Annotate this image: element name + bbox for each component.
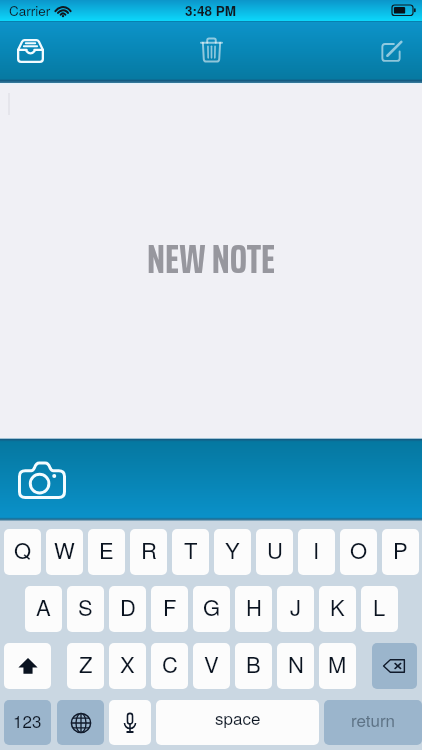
staticText: M	[328, 648, 347, 680]
staticText: 123	[13, 708, 42, 732]
staticText: J	[290, 591, 302, 623]
staticText: L	[373, 591, 386, 623]
button[interactable]: N	[277, 643, 314, 689]
staticText: V	[204, 648, 219, 680]
button[interactable]: space	[156, 700, 319, 745]
button[interactable]: Archive	[4, 25, 56, 77]
staticText: B	[246, 648, 261, 680]
button[interactable]: G	[193, 586, 230, 632]
button[interactable]: X	[109, 643, 146, 689]
button[interactable]: W	[46, 529, 83, 575]
button[interactable]: U	[256, 529, 293, 575]
button[interactable]: I	[298, 529, 335, 575]
staticText: P	[393, 534, 408, 566]
staticText: O	[350, 534, 368, 566]
staticText: 3:48 PM	[185, 1, 237, 20]
button[interactable]: R	[130, 529, 167, 575]
button[interactable]: Z	[67, 643, 104, 689]
button[interactable]: H	[235, 586, 272, 632]
staticText: E	[99, 534, 114, 566]
staticText: X	[120, 648, 135, 680]
staticText: D	[120, 591, 136, 623]
staticText: C	[162, 648, 178, 680]
button[interactable]: Camera	[7, 451, 76, 509]
button[interactable]: E	[88, 529, 125, 575]
button[interactable]: Shift	[4, 643, 51, 689]
button[interactable]: T	[172, 529, 209, 575]
staticText: R	[141, 534, 157, 566]
button[interactable]: C	[151, 643, 188, 689]
staticText: N	[288, 648, 304, 680]
button[interactable]: P	[382, 529, 419, 575]
staticText: NEW NOTE	[147, 226, 276, 291]
button[interactable]: Compose	[365, 26, 417, 78]
staticText: Carrier	[9, 1, 51, 20]
button[interactable]: V	[193, 643, 230, 689]
button[interactable]: S	[67, 586, 104, 632]
button[interactable]: D	[109, 586, 146, 632]
staticText: space	[215, 705, 261, 729]
button[interactable]: return	[324, 700, 422, 745]
button[interactable]: L	[361, 586, 398, 632]
button[interactable]: A	[25, 586, 62, 632]
staticText: H	[246, 591, 262, 623]
button[interactable]: Backspace	[372, 643, 417, 689]
button[interactable]: Y	[214, 529, 251, 575]
staticText: return	[351, 707, 396, 731]
staticText: A	[36, 591, 51, 623]
button[interactable]: Switch keyboard	[57, 700, 104, 745]
staticText: Q	[14, 534, 32, 566]
button[interactable]: 123	[4, 700, 51, 745]
staticText: W	[54, 534, 75, 566]
button[interactable]: K	[319, 586, 356, 632]
button[interactable]: M	[319, 643, 356, 689]
button[interactable]: J	[277, 586, 314, 632]
button[interactable]: F	[151, 586, 188, 632]
button[interactable]: Delete	[185, 24, 237, 76]
staticText: S	[78, 591, 93, 623]
staticText: Y	[225, 534, 240, 566]
staticText: K	[330, 591, 345, 623]
staticText: T	[184, 534, 198, 566]
staticText: G	[203, 591, 221, 623]
staticText: I	[313, 534, 320, 566]
staticText: F	[163, 591, 177, 623]
staticText: U	[267, 534, 283, 566]
button[interactable]: Q	[4, 529, 41, 575]
staticText: Z	[79, 648, 93, 680]
button[interactable]: B	[235, 643, 272, 689]
button[interactable]: Dictate	[109, 700, 151, 745]
button[interactable]: O	[340, 529, 377, 575]
